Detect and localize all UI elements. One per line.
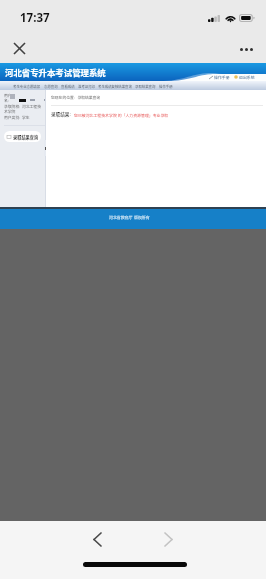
- button[interactable]: 操作手册: [159, 84, 173, 89]
- staticText: 准考证打印: [78, 84, 95, 89]
- staticText: 录取院校: 河北工程技 术学院: [4, 104, 41, 114]
- staticText: 录取结果查询: [13, 134, 39, 140]
- button[interactable]: 退出系统: [234, 74, 255, 80]
- button[interactable]: 志愿查询: [44, 84, 58, 89]
- button[interactable]: 查看成绩: [61, 84, 75, 89]
- staticText: 您已被河北工程技术学院 的「人力资源管理」专业录取: [74, 112, 169, 118]
- button[interactable]: 录取结果查询: [4, 131, 41, 142]
- button[interactable]: 考生成绩复核结果查询: [98, 84, 132, 89]
- staticText: 用户类别: 学生: [4, 115, 30, 121]
- staticText: 17:37: [20, 10, 50, 26]
- staticText: 退出系统: [239, 74, 255, 80]
- staticText: 志愿查询: [44, 84, 58, 89]
- staticText: 操作手册: [159, 84, 173, 89]
- staticText: 河北省专升本考试管理系统: [5, 66, 106, 78]
- staticText: 您现在的位置: 录取结果查询: [51, 95, 101, 101]
- staticText: 查看成绩: [61, 84, 75, 89]
- button[interactable]: 录取结果查询: [135, 84, 156, 89]
- staticText: 考生专业志愿填报: [13, 84, 41, 89]
- staticText: 考生成绩复核结果查询: [98, 84, 132, 89]
- staticText: 操作手册: [214, 74, 230, 80]
- button[interactable]: Back: [85, 527, 110, 552]
- button[interactable]: 准考证打印: [78, 84, 95, 89]
- staticText: 用户 名:: [4, 93, 12, 103]
- button[interactable]: 考生专业志愿填报: [13, 84, 41, 89]
- staticText: 录取结果查询: [135, 84, 156, 89]
- staticText: 录取结果:: [51, 111, 71, 118]
- button[interactable]: Forward: [156, 527, 181, 552]
- button[interactable]: More options: [234, 37, 258, 61]
- staticText: 河北省教育厅 版权所有: [109, 214, 150, 220]
- button[interactable]: Close: [8, 37, 31, 60]
- button[interactable]: Collapse sidebar: [44, 140, 47, 156]
- button[interactable]: 操作手册: [209, 74, 230, 80]
